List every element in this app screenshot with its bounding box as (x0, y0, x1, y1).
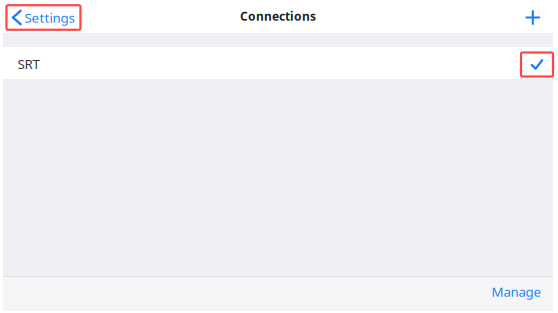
button[interactable]: Manage (484, 279, 548, 309)
staticText: Settings (24, 9, 74, 26)
button[interactable]: SRT (3, 47, 553, 79)
staticText: Connections (240, 8, 316, 24)
staticText: SRT (17, 55, 39, 73)
staticText: Manage (491, 283, 541, 300)
button[interactable]: Settings (6, 5, 81, 30)
button[interactable]: Add connection (520, 4, 546, 30)
